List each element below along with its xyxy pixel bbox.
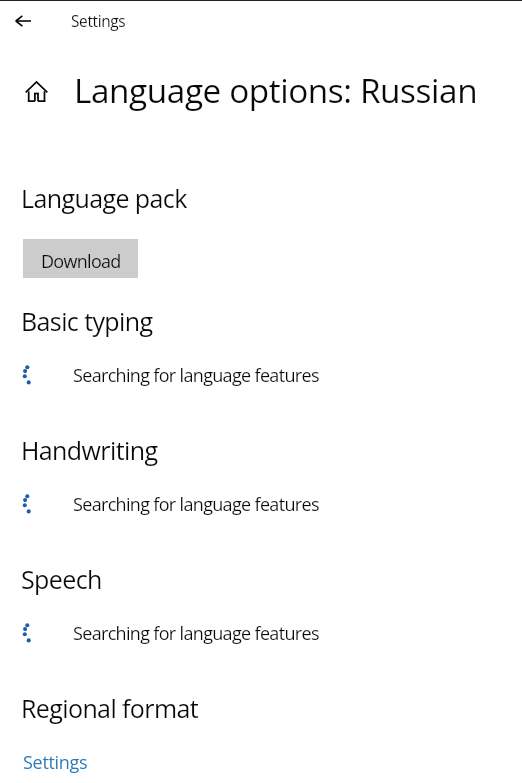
button[interactable]: Settings (23, 750, 88, 775)
staticText: Speech (21, 562, 102, 596)
staticText: Searching for language features (73, 621, 319, 646)
staticText: Regional format (21, 691, 199, 725)
staticText: Language pack (21, 181, 187, 215)
staticText: Searching for language features (73, 492, 319, 517)
staticText: Searching for language features (73, 363, 319, 388)
staticText: Download (41, 249, 121, 274)
staticText: Language options: Russian (74, 67, 478, 112)
button[interactable]: Home (25, 81, 48, 102)
staticText: Basic typing (21, 304, 153, 338)
staticText: Settings (23, 750, 88, 775)
staticText: Settings (71, 11, 126, 32)
button[interactable]: Back (6, 8, 40, 34)
staticText: Handwriting (21, 433, 158, 467)
button[interactable]: Download (23, 239, 138, 278)
